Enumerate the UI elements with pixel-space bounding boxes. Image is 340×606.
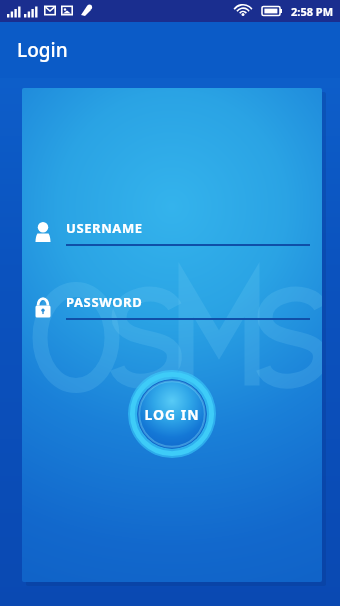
staticText: 2:58 PM (291, 4, 334, 19)
staticText: PASSWORD (66, 293, 143, 311)
staticText: LOG IN (144, 405, 200, 424)
staticText: Login (17, 37, 68, 63)
staticText: USERNAME (66, 219, 143, 237)
button[interactable]: Username (22, 206, 322, 258)
button[interactable]: LOG IN (128, 370, 216, 458)
button[interactable]: Password (22, 280, 322, 332)
